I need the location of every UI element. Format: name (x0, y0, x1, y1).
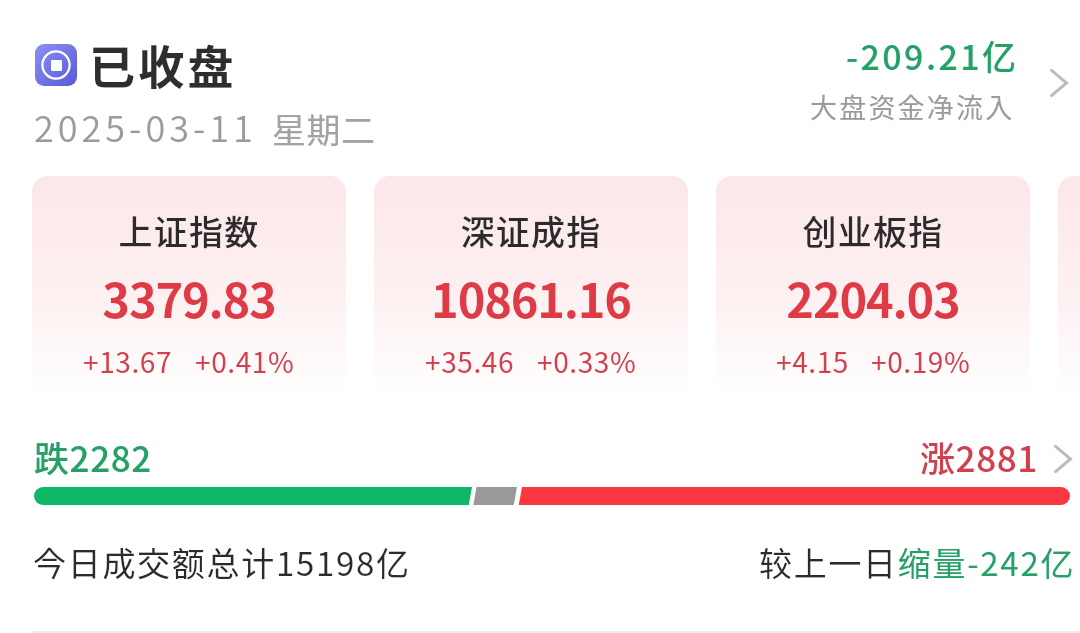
staticText: 创业板指 (716, 206, 1030, 255)
button[interactable]: 科创50 (1058, 176, 1080, 400)
button[interactable]: 查看大盘资金净流入 (1044, 68, 1074, 98)
staticText: +0.41% (195, 341, 295, 382)
staticText: +0.33% (537, 341, 637, 382)
staticText: 上证指数 (32, 206, 346, 255)
staticText: +13.67 (83, 341, 173, 382)
staticText: +35.46 (425, 341, 515, 382)
staticText: 2204.03 (716, 263, 1030, 331)
staticText: 今日成交额总计15198亿 (33, 538, 411, 586)
button[interactable]: 深证成指 (374, 176, 688, 400)
staticText: 涨2881 (920, 431, 1038, 482)
staticText: 较上一日缩量-242亿 (759, 538, 1076, 586)
button[interactable]: 跌2282 (34, 424, 1076, 512)
staticText: +4.15 (776, 341, 849, 382)
staticText: 大盘资金净流入 (810, 87, 1015, 126)
staticText: +0.19% (871, 341, 971, 382)
staticText: 跌2282 (34, 431, 152, 482)
button[interactable]: 涨跌分布 (34, 487, 1070, 505)
staticText: 已收盘 (89, 31, 237, 98)
staticText: 深证成指 (374, 206, 688, 255)
button[interactable]: 创业板指 (716, 176, 1030, 400)
staticText: 10861.16 (374, 263, 688, 331)
button[interactable]: 上证指数 (32, 176, 346, 400)
staticText: 2025-03-11 (34, 100, 257, 152)
staticText: 星期二 (272, 104, 376, 153)
staticText: -209.21亿 (846, 31, 1019, 80)
staticText: 3379.83 (32, 263, 346, 331)
other: 查看涨跌家数 (1048, 444, 1078, 474)
button[interactable]: 已收盘 (35, 31, 237, 98)
